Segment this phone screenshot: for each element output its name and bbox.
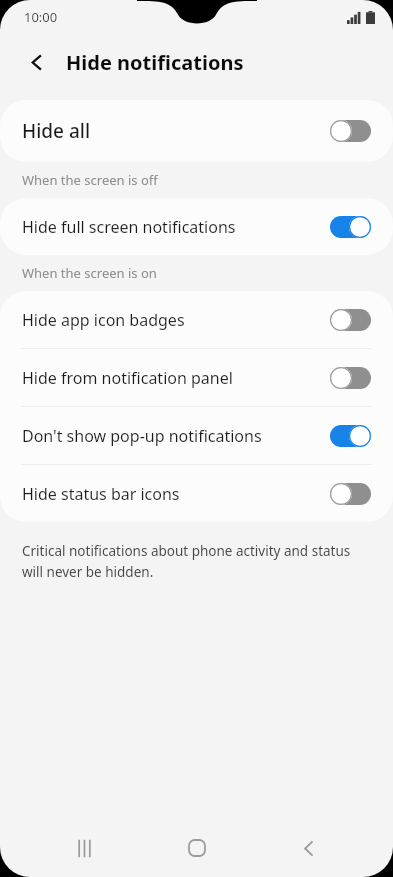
button[interactable]: Home	[169, 820, 225, 876]
staticText: 10:00	[24, 8, 58, 26]
button[interactable]: Back	[20, 45, 54, 79]
button[interactable]: Hide all	[0, 100, 393, 162]
staticText: Hide from notification panel	[22, 367, 330, 389]
button[interactable]: Back	[281, 820, 337, 876]
staticText: Critical notifications about phone activ…	[22, 542, 371, 581]
staticText: Hide full screen notifications	[22, 216, 330, 238]
button[interactable]: Toggle on	[330, 216, 371, 238]
button[interactable]: Toggle off	[330, 483, 371, 505]
staticText: Hide status bar icons	[22, 483, 330, 505]
button[interactable]: Recent apps	[56, 820, 112, 876]
staticText: Hide all	[22, 118, 330, 144]
button[interactable]: Toggle off	[330, 309, 371, 331]
button[interactable]: Hide full screen notifications	[0, 198, 393, 255]
button[interactable]: Toggle off	[330, 120, 371, 142]
staticText: Don't show pop-up notifications	[22, 425, 330, 447]
button[interactable]: Hide from notification panel	[0, 349, 393, 406]
staticText: Hide notifications	[66, 49, 244, 76]
button[interactable]: Don't show pop-up notifications	[0, 407, 393, 464]
button[interactable]: Hide app icon badges	[0, 291, 393, 348]
button[interactable]: Hide status bar icons	[0, 465, 393, 522]
staticText: When the screen is off	[22, 171, 158, 189]
button[interactable]: Toggle on	[330, 425, 371, 447]
staticText: Hide app icon badges	[22, 309, 330, 331]
staticText: When the screen is on	[22, 264, 157, 282]
button[interactable]: Toggle off	[330, 367, 371, 389]
